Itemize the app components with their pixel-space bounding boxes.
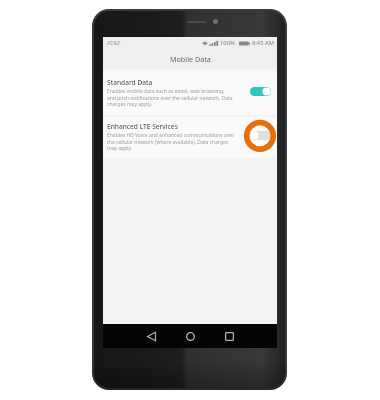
staticText: Enhanced LTE Services [107, 122, 178, 131]
button[interactable]: Back [141, 324, 161, 348]
button[interactable]: Enhanced LTE Services [103, 117, 277, 158]
staticText: Enables mobile data such as email, web b… [107, 88, 233, 107]
staticText: 9:45 AM [252, 39, 274, 47]
button[interactable]: Standard Data [103, 71, 277, 115]
staticText: Standard Data [107, 78, 153, 87]
staticText: Mobile Data [170, 54, 211, 64]
button[interactable]: Recent apps [219, 324, 239, 348]
staticText: AT&T [107, 39, 121, 47]
button[interactable]: Switch off [250, 131, 271, 140]
staticText: 100% [220, 39, 235, 47]
button[interactable]: Home [180, 324, 200, 348]
button[interactable]: Switch on [250, 87, 271, 96]
staticText: Enables HD Voice and enhanced communicat… [107, 132, 235, 151]
